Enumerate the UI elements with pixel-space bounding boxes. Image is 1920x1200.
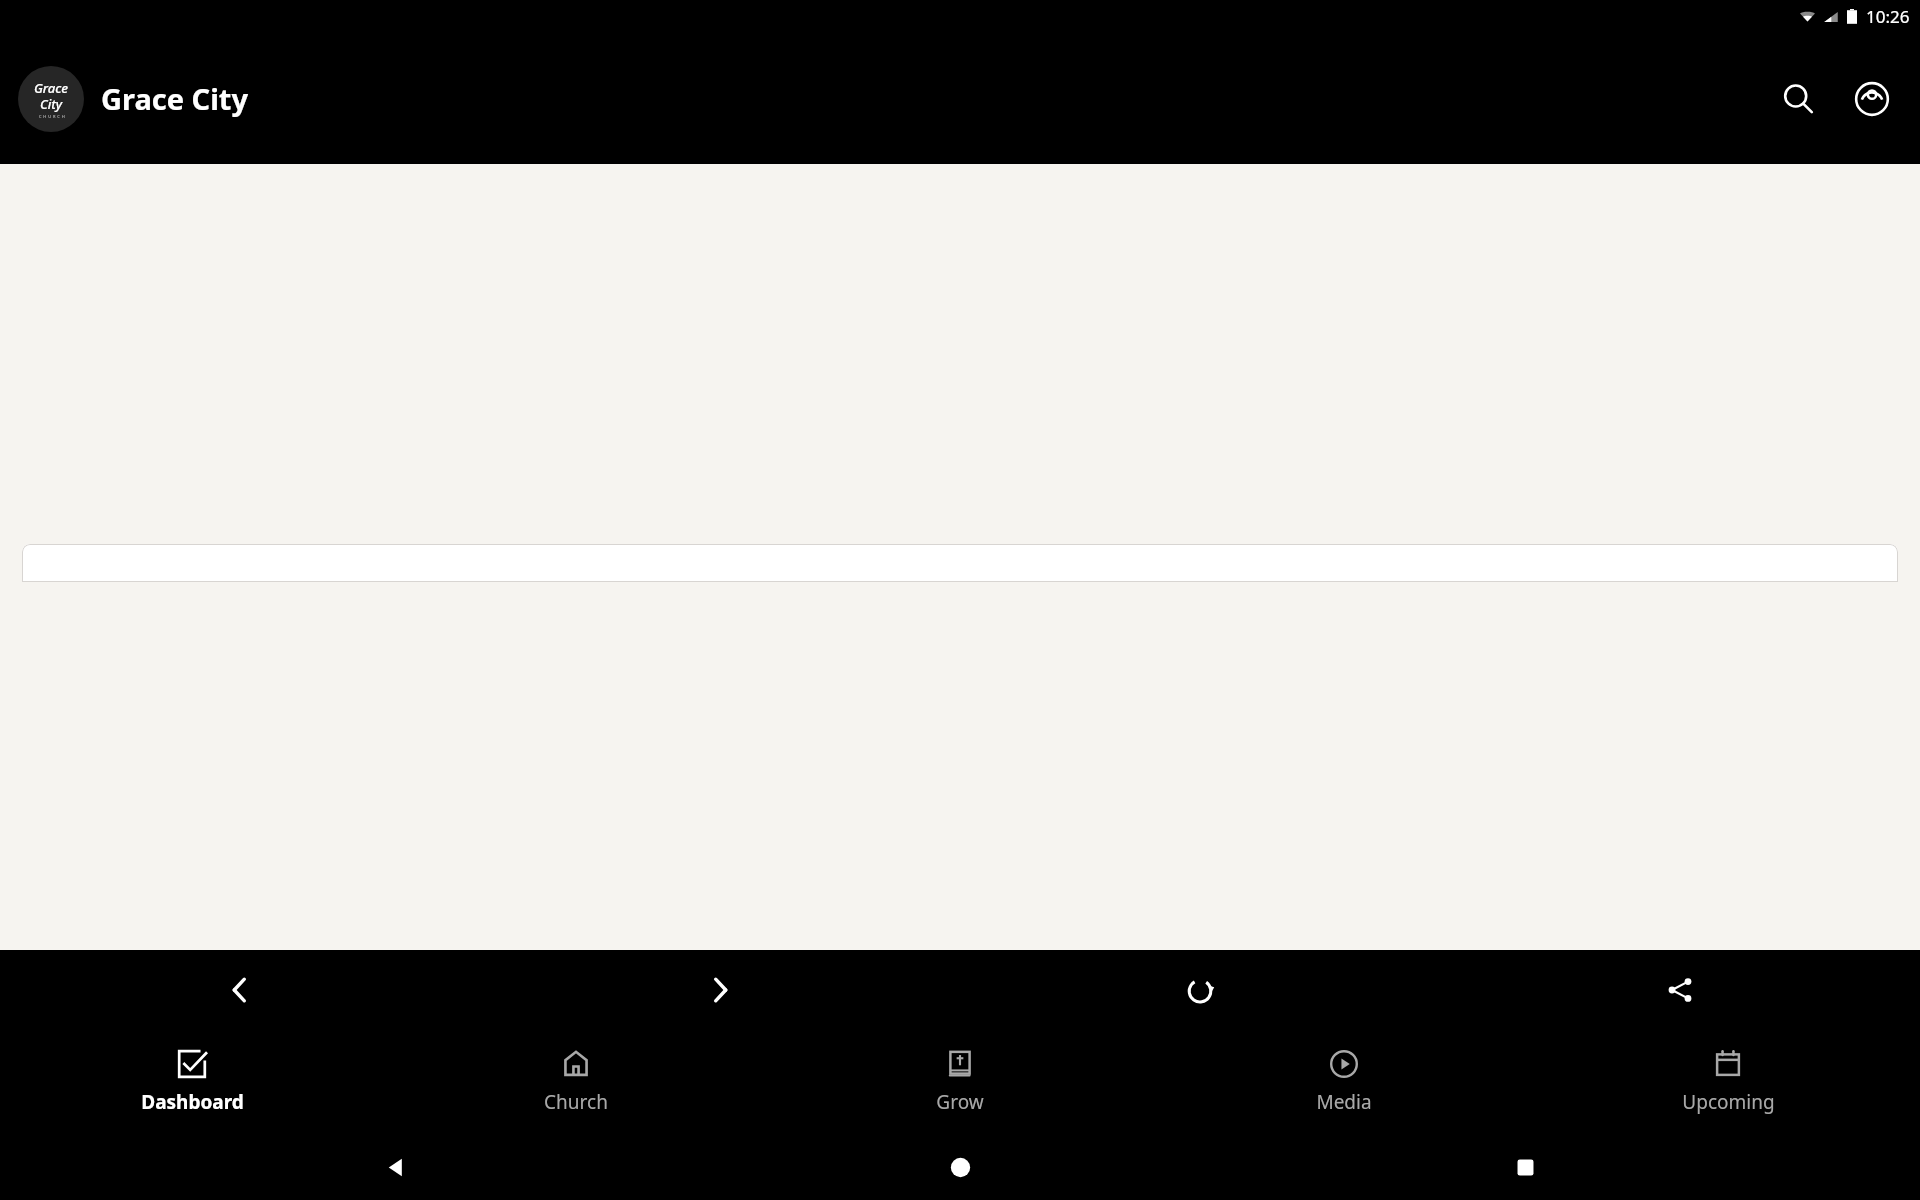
button[interactable]: Refresh: [960, 950, 1440, 1030]
button[interactable]: Grow: [768, 1030, 1152, 1133]
button[interactable]: Dashboard: [0, 1030, 384, 1133]
button[interactable]: Media: [1152, 1030, 1536, 1133]
staticText: Grow: [936, 1089, 984, 1115]
staticText: Dashboard: [141, 1089, 244, 1115]
staticText: Upcoming: [1682, 1089, 1775, 1115]
staticText: Media: [1316, 1089, 1372, 1115]
button[interactable]: Grace: [18, 66, 84, 132]
button[interactable]: Account: [1842, 69, 1902, 129]
staticText: Grace: [34, 79, 69, 97]
staticText: 10:26: [1866, 5, 1910, 28]
button[interactable]: Home: [932, 1139, 988, 1195]
staticText: City: [40, 95, 63, 113]
button[interactable]: Forward: [480, 950, 960, 1030]
button[interactable]: Back: [367, 1139, 423, 1195]
button[interactable]: Back: [0, 950, 480, 1030]
button[interactable]: Share: [1440, 950, 1920, 1030]
staticText: Grace City: [101, 79, 249, 118]
button[interactable]: Recents: [1497, 1139, 1553, 1195]
button[interactable]: Upcoming: [1536, 1030, 1920, 1133]
button[interactable]: Search: [1768, 69, 1828, 129]
staticText: Church: [544, 1089, 608, 1115]
button[interactable]: Church: [384, 1030, 768, 1133]
staticText: C H U R C H: [39, 114, 65, 119]
